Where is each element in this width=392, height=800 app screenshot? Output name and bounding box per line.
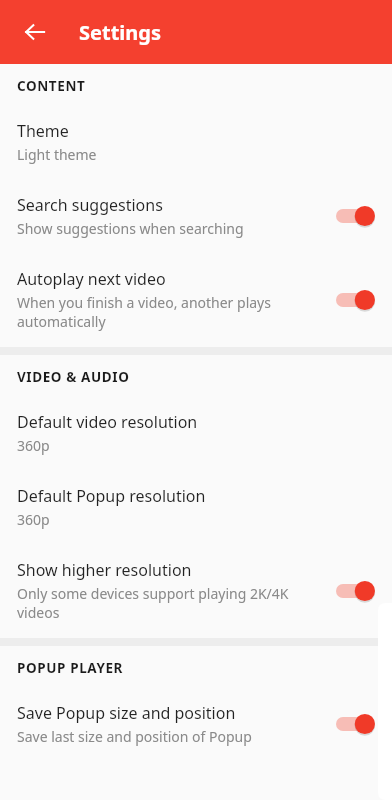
button[interactable]: Default Popup resolution bbox=[0, 473, 392, 547]
button[interactable]: Back bbox=[11, 8, 59, 56]
staticText: Show suggestions when searching bbox=[17, 219, 244, 238]
button[interactable]: Autoplay next video bbox=[0, 256, 392, 347]
staticText: Show higher resolution bbox=[17, 559, 192, 581]
staticText: 360p bbox=[17, 510, 50, 529]
staticText: Settings bbox=[79, 19, 161, 46]
staticText: POPUP PLAYER bbox=[17, 659, 124, 677]
button[interactable]: Default video resolution bbox=[0, 399, 392, 473]
staticText: Only some devices support playing 2K/4K … bbox=[17, 584, 324, 622]
staticText: CONTENT bbox=[17, 77, 86, 95]
staticText: Search suggestions bbox=[17, 194, 163, 216]
button[interactable]: Show higher resolution bbox=[0, 547, 392, 638]
staticText: Autoplay next video bbox=[17, 268, 166, 290]
staticText: 360p bbox=[17, 436, 50, 455]
staticText: When you finish a video, another plays a… bbox=[17, 293, 324, 331]
staticText: VIDEO & AUDIO bbox=[17, 368, 130, 386]
button[interactable]: Save Popup size and position bbox=[0, 690, 392, 764]
staticText: Save Popup size and position bbox=[17, 702, 236, 724]
button[interactable]: Search suggestions bbox=[0, 182, 392, 256]
staticText: Theme bbox=[17, 120, 69, 142]
button[interactable]: Theme bbox=[0, 108, 392, 182]
staticText: Default Popup resolution bbox=[17, 485, 206, 507]
staticText: Light theme bbox=[17, 145, 97, 164]
staticText: Save last size and position of Popup bbox=[17, 727, 252, 746]
staticText: Default video resolution bbox=[17, 411, 198, 433]
